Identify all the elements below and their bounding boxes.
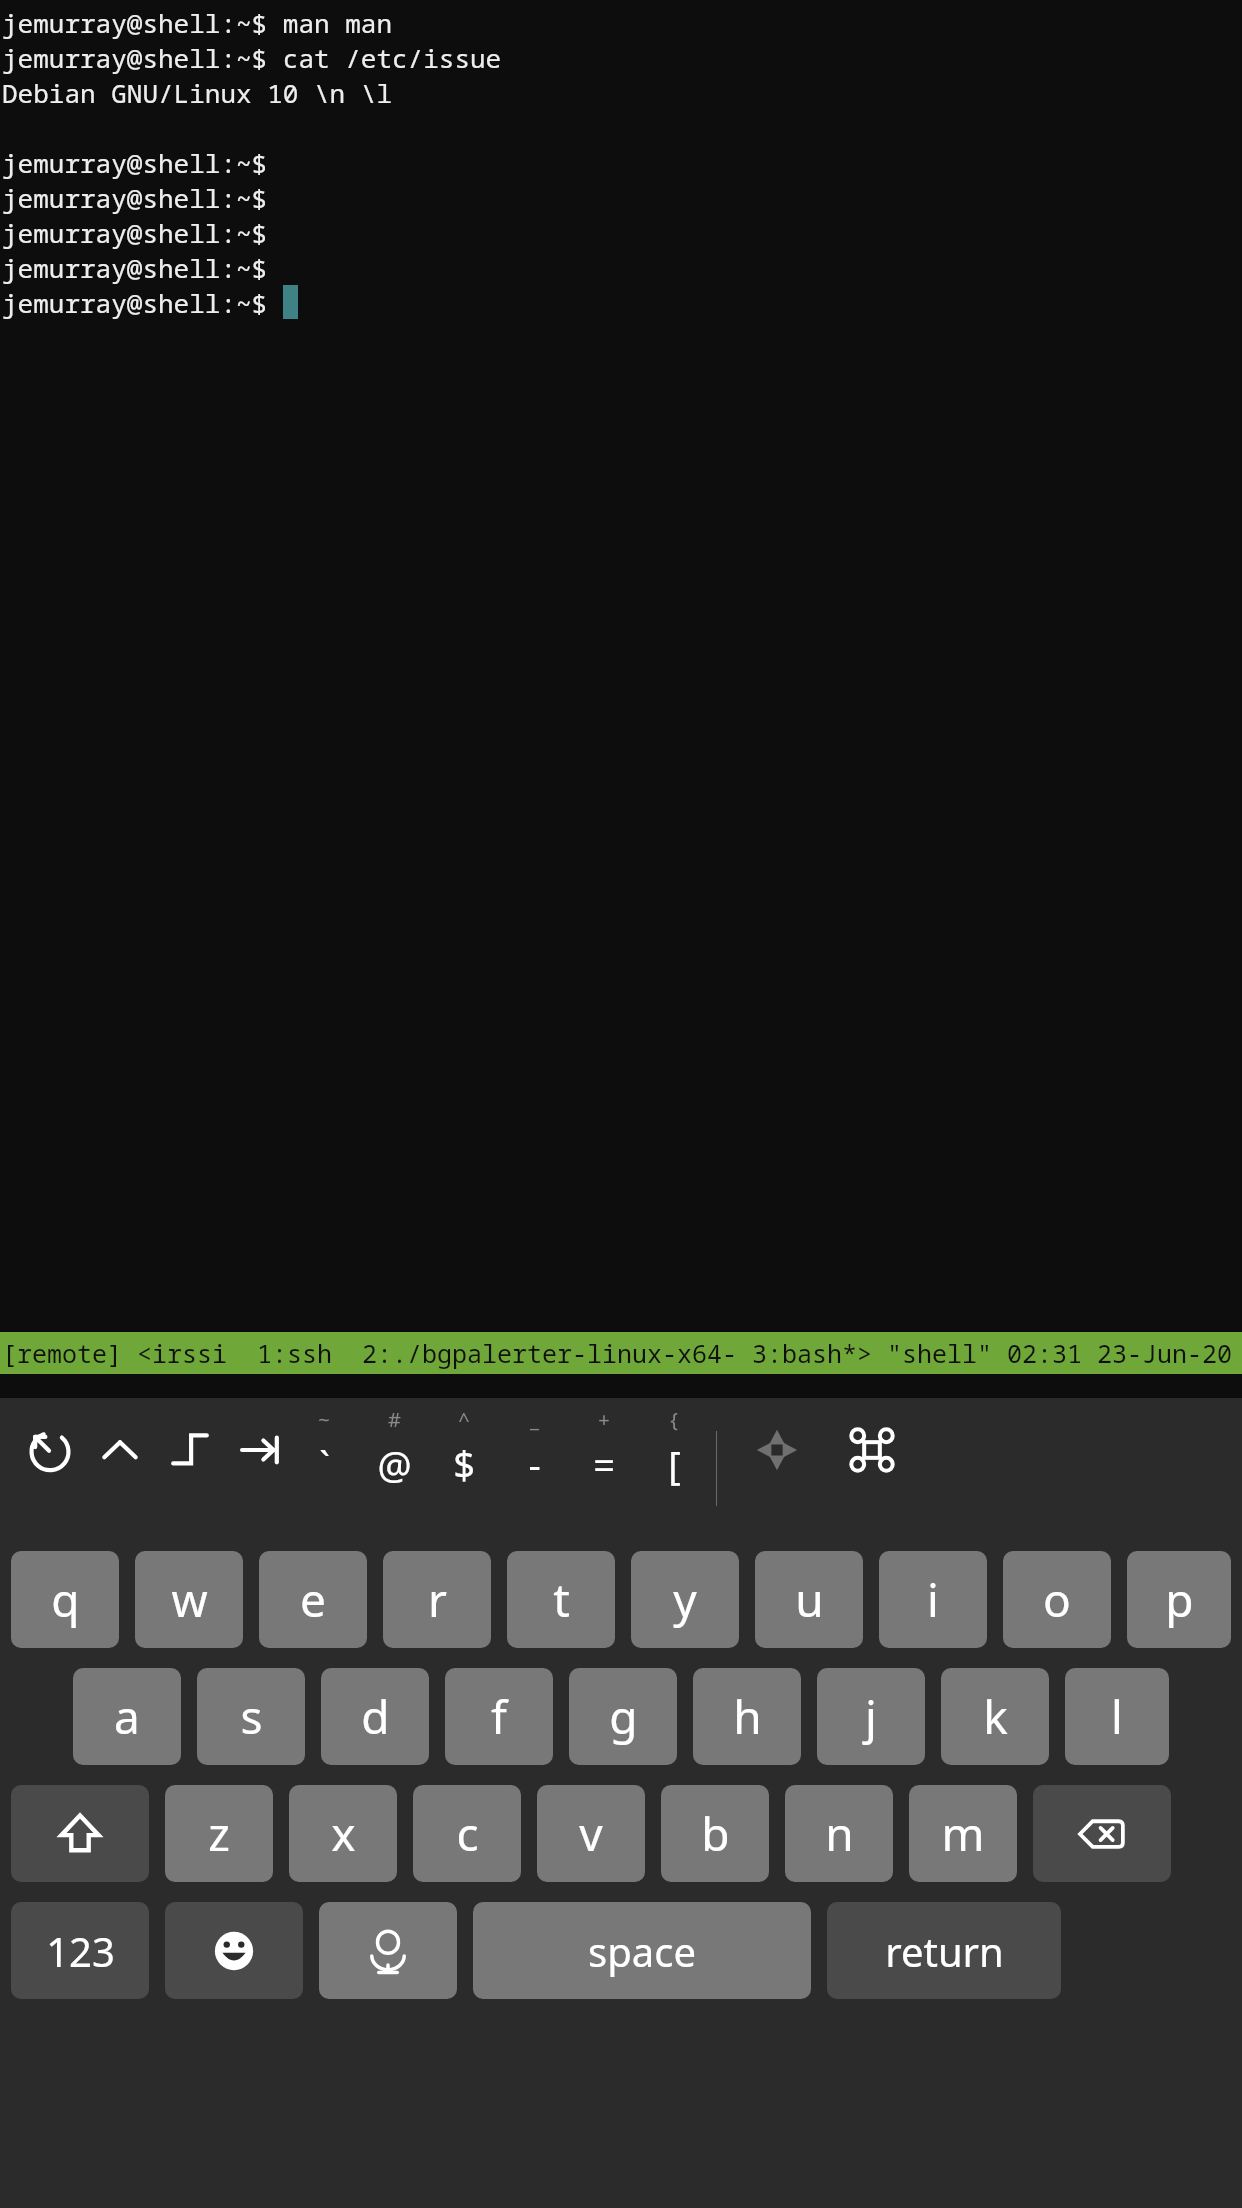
button[interactable]: a xyxy=(73,1668,181,1765)
button[interactable]: k xyxy=(941,1668,1049,1765)
staticText: r xyxy=(428,1568,447,1631)
staticText: d xyxy=(361,1685,390,1748)
staticText: b xyxy=(701,1802,730,1865)
button[interactable]: o xyxy=(1003,1551,1111,1648)
staticText: z xyxy=(208,1802,230,1865)
button[interactable]: Emoji xyxy=(165,1902,303,1999)
staticText: t xyxy=(553,1568,570,1631)
button[interactable]: Escape xyxy=(148,1408,232,1492)
button[interactable]: v xyxy=(537,1785,645,1882)
button[interactable]: u xyxy=(755,1551,863,1648)
staticText: a xyxy=(114,1685,140,1748)
staticText: k xyxy=(983,1685,1008,1748)
button[interactable]: Undo xyxy=(8,1408,92,1492)
staticText: jemurray@shell:~$ xyxy=(2,250,268,285)
staticText: u xyxy=(795,1568,824,1631)
staticText: jemurray@shell:~$ man man xyxy=(2,5,393,40)
staticText: $ xyxy=(453,1438,475,1490)
staticText: l xyxy=(1111,1685,1123,1748)
button[interactable]: ~ xyxy=(288,1404,360,1496)
button[interactable]: 123 xyxy=(11,1902,149,1999)
staticText: # xyxy=(388,1406,401,1433)
button[interactable]: s xyxy=(197,1668,305,1765)
staticText: jemurray@shell:~$ xyxy=(2,180,268,215)
button[interactable]: h xyxy=(693,1668,801,1765)
button[interactable]: w xyxy=(135,1551,243,1648)
staticText: y xyxy=(673,1568,697,1631)
button[interactable]: x xyxy=(289,1785,397,1882)
button[interactable]: d xyxy=(321,1668,429,1765)
staticText: w xyxy=(171,1568,208,1631)
button[interactable]: r xyxy=(383,1551,491,1648)
staticText: Debian GNU/Linux 10 \n \l xyxy=(2,75,393,110)
staticText: s xyxy=(240,1685,263,1748)
staticText: [ xyxy=(668,1438,681,1490)
button[interactable]: ^ xyxy=(428,1404,500,1496)
staticText: g xyxy=(609,1685,638,1748)
button[interactable]: Arrow keys xyxy=(735,1408,819,1492)
staticText: c xyxy=(456,1802,479,1865)
button[interactable]: c xyxy=(413,1785,521,1882)
button[interactable]: z xyxy=(165,1785,273,1882)
staticText: @ xyxy=(377,1438,412,1490)
button[interactable]: e xyxy=(259,1551,367,1648)
staticText: f xyxy=(491,1685,507,1748)
staticText: 123 xyxy=(46,1924,115,1978)
staticText: + xyxy=(598,1406,610,1433)
staticText: space xyxy=(588,1924,696,1978)
staticText: o xyxy=(1043,1568,1071,1631)
staticText: v xyxy=(579,1802,603,1865)
button[interactable]: m xyxy=(909,1785,1017,1882)
staticText: ~ xyxy=(318,1406,330,1433)
button[interactable]: Backspace xyxy=(1033,1785,1171,1882)
staticText: p xyxy=(1165,1568,1194,1631)
button[interactable]: Tab xyxy=(218,1408,302,1492)
staticText: q xyxy=(51,1568,80,1631)
button[interactable]: i xyxy=(879,1551,987,1648)
staticText: ^ xyxy=(458,1406,470,1433)
button[interactable]: l xyxy=(1065,1668,1169,1765)
staticText: jemurray@shell:~$ cat /etc/issue xyxy=(2,40,502,75)
staticText: = xyxy=(593,1438,615,1490)
button[interactable]: q xyxy=(11,1551,119,1648)
staticText: _ xyxy=(530,1406,539,1433)
button[interactable]: t xyxy=(507,1551,615,1648)
staticText: - xyxy=(528,1438,541,1490)
button[interactable]: Voice input xyxy=(319,1902,457,1999)
staticText: m xyxy=(941,1802,985,1865)
button[interactable]: { xyxy=(638,1404,710,1496)
staticText: return xyxy=(885,1924,1004,1978)
staticText: [remote] <irssi 1:ssh 2:./bgpalerter-lin… xyxy=(2,1336,1233,1370)
staticText: h xyxy=(733,1685,762,1748)
button[interactable]: Command xyxy=(830,1408,914,1492)
staticText: jemurray@shell:~$ xyxy=(2,215,268,250)
button[interactable]: y xyxy=(631,1551,739,1648)
staticText: i xyxy=(927,1568,939,1631)
staticText: e xyxy=(300,1568,326,1631)
staticText: x xyxy=(331,1802,356,1865)
staticText: jemurray@shell:~$ xyxy=(2,285,283,320)
button[interactable]: Control xyxy=(78,1408,162,1492)
staticText: n xyxy=(825,1802,854,1865)
button[interactable]: n xyxy=(785,1785,893,1882)
button[interactable]: _ xyxy=(498,1404,570,1496)
button[interactable]: b xyxy=(661,1785,769,1882)
staticText: { xyxy=(670,1406,678,1433)
button[interactable]: Shift xyxy=(11,1785,149,1882)
button[interactable]: # xyxy=(358,1404,430,1496)
button[interactable]: + xyxy=(568,1404,640,1496)
button[interactable]: return xyxy=(827,1902,1061,1999)
staticText: ` xyxy=(319,1438,330,1490)
button[interactable]: space xyxy=(473,1902,811,1999)
button[interactable]: j xyxy=(817,1668,925,1765)
button[interactable]: f xyxy=(445,1668,553,1765)
staticText: jemurray@shell:~$ xyxy=(2,145,268,180)
button[interactable]: p xyxy=(1127,1551,1231,1648)
staticText: j xyxy=(865,1685,877,1748)
button[interactable]: g xyxy=(569,1668,677,1765)
